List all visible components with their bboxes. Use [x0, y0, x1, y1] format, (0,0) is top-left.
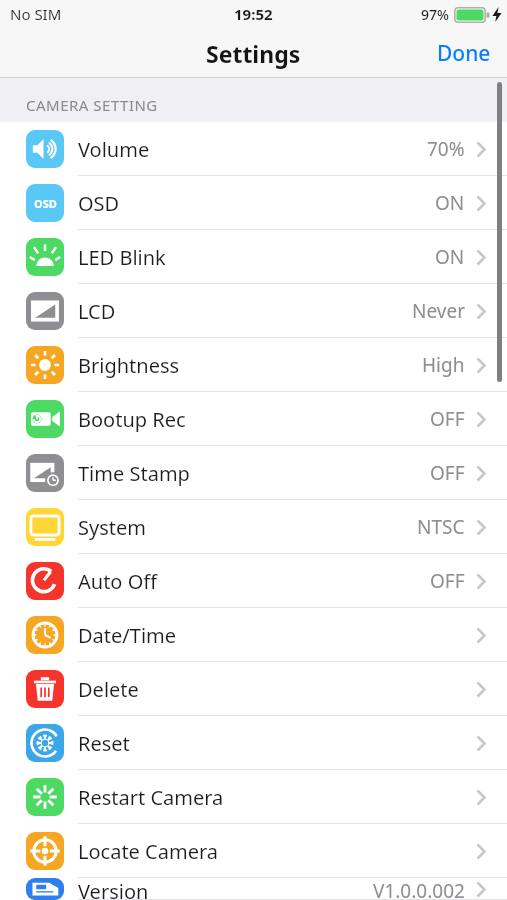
staticText: Time Stamp [78, 460, 190, 487]
staticText: No SIM [10, 4, 62, 24]
button[interactable]: Reset [0, 716, 507, 770]
button[interactable]: Time Stamp [0, 446, 507, 500]
staticText: OFF [430, 406, 465, 432]
staticText: Date/Time [78, 622, 177, 649]
staticText: OFF [430, 568, 465, 594]
button[interactable]: LCD [0, 284, 507, 338]
staticText: CAMERA SETTING [26, 95, 158, 115]
button[interactable]: Date/Time [0, 608, 507, 662]
staticText: Never [412, 298, 465, 324]
button[interactable]: Bootup Rec [0, 392, 507, 446]
staticText: OSD [34, 196, 57, 211]
staticText: Settings [206, 38, 301, 69]
staticText: ON [435, 244, 465, 270]
staticText: Restart Camera [78, 784, 224, 811]
staticText: OFF [430, 460, 465, 486]
button[interactable]: OSD [0, 176, 507, 230]
staticText: Volume [78, 136, 150, 163]
staticText: Brightness [78, 352, 180, 379]
staticText: LED Blink [78, 244, 166, 271]
button[interactable]: Version [0, 878, 507, 900]
staticText: NTSC [417, 514, 465, 540]
staticText: LCD [78, 298, 116, 325]
staticText: 70% [427, 136, 465, 162]
button[interactable]: Done [421, 31, 507, 76]
staticText: Locate Camera [78, 838, 219, 865]
button[interactable]: Restart Camera [0, 770, 507, 824]
button[interactable]: Volume [0, 122, 507, 176]
button[interactable]: System [0, 500, 507, 554]
button[interactable]: LED Blink [0, 230, 507, 284]
staticText: Reset [78, 730, 130, 757]
button[interactable]: Auto Off [0, 554, 507, 608]
staticText: OSD [78, 190, 120, 217]
staticText: High [422, 352, 465, 378]
button[interactable]: Locate Camera [0, 824, 507, 878]
staticText: 97% [421, 5, 449, 24]
button[interactable]: Brightness [0, 338, 507, 392]
staticText: 19:52 [234, 4, 273, 24]
staticText: Version [78, 878, 149, 900]
staticText: Done [437, 39, 491, 68]
staticText: Bootup Rec [78, 406, 186, 433]
staticText: ON [435, 190, 465, 216]
staticText: Auto Off [78, 568, 158, 595]
staticText: Delete [78, 676, 139, 703]
staticText: System [78, 514, 146, 541]
staticText: V1.0.0.002 [373, 878, 465, 900]
button[interactable]: Delete [0, 662, 507, 716]
